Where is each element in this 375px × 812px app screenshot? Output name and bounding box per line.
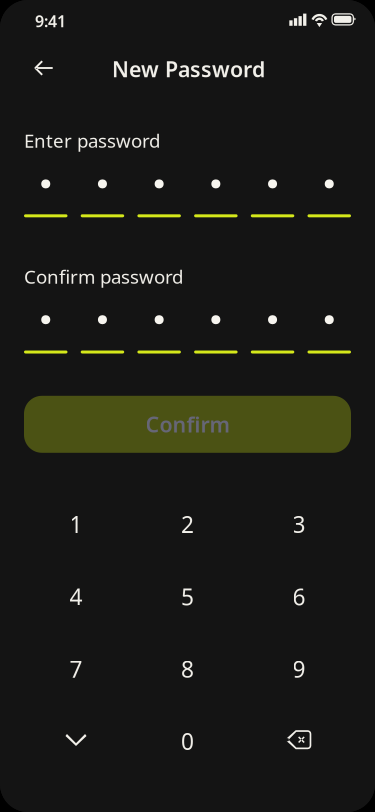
button[interactable]: 3 bbox=[243, 488, 354, 560]
button[interactable]: 5 bbox=[132, 561, 243, 633]
staticText: 9:41 bbox=[35, 10, 66, 32]
staticText: 0 bbox=[181, 726, 194, 756]
button[interactable]: Hide keyboard bbox=[20, 705, 131, 777]
staticText: Confirm password bbox=[24, 264, 183, 289]
staticText: 3 bbox=[292, 509, 305, 539]
staticText: 7 bbox=[69, 654, 82, 684]
button[interactable]: 6 bbox=[243, 561, 354, 633]
staticText: 5 bbox=[181, 581, 194, 612]
staticText: Confirm bbox=[145, 410, 229, 438]
button[interactable]: 2 bbox=[132, 488, 243, 560]
button[interactable]: 8 bbox=[132, 633, 243, 705]
button[interactable]: 4 bbox=[20, 561, 131, 633]
staticText: 1 bbox=[69, 509, 82, 539]
button[interactable]: 7 bbox=[20, 633, 131, 705]
staticText: 2 bbox=[181, 509, 194, 539]
button[interactable]: Confirm bbox=[24, 396, 351, 453]
staticText: 8 bbox=[181, 654, 194, 684]
staticText: 9 bbox=[292, 654, 305, 684]
staticText: New Password bbox=[112, 55, 265, 83]
button[interactable]: Back bbox=[22, 46, 66, 90]
button[interactable]: 1 bbox=[20, 488, 131, 560]
staticText: 4 bbox=[69, 581, 82, 612]
button[interactable]: 9 bbox=[243, 633, 354, 705]
staticText: 6 bbox=[292, 581, 305, 612]
button[interactable]: 0 bbox=[132, 705, 243, 777]
button[interactable]: Delete bbox=[243, 704, 354, 776]
staticText: Enter password bbox=[24, 128, 160, 153]
